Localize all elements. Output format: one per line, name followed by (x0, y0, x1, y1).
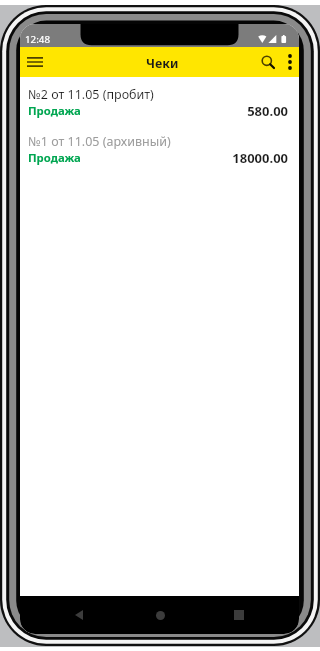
staticText: №2 от 11.05 (пробит) (28, 86, 154, 103)
staticText: 580.00 (247, 102, 288, 120)
button[interactable]: Search (255, 47, 281, 77)
staticText: Продажа (28, 103, 81, 118)
button[interactable]: More options (281, 47, 299, 77)
button[interactable]: Home (143, 598, 177, 632)
staticText: 12:48 (25, 33, 51, 46)
staticText: Продажа (28, 150, 81, 165)
button[interactable]: Menu (20, 47, 50, 77)
button[interactable]: №1 от 11.05 (архивный) (20, 133, 299, 180)
staticText: Чеки (146, 55, 179, 72)
staticText: 18000.00 (232, 149, 288, 167)
staticText: №1 от 11.05 (архивный) (28, 133, 171, 150)
button[interactable]: №2 от 11.05 (пробит) (20, 86, 299, 133)
button[interactable]: Back (62, 598, 96, 632)
button[interactable]: Recent apps (222, 598, 256, 632)
